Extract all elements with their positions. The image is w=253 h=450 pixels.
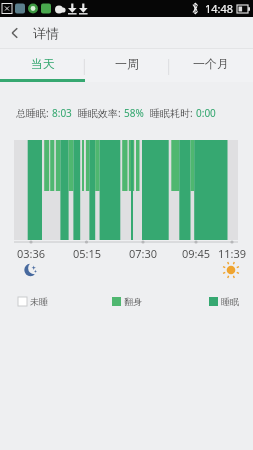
staticText: 一周	[115, 56, 139, 71]
button[interactable]: 一个月	[169, 49, 253, 82]
button[interactable]: 睡眠	[209, 294, 239, 308]
staticText: 睡眠耗时:	[150, 106, 196, 120]
staticText: 03:36	[11, 246, 51, 261]
staticText: 未睡	[30, 296, 48, 307]
staticText: 一个月	[193, 56, 229, 71]
staticText: 11:39	[212, 246, 252, 261]
staticText: 58%	[124, 106, 144, 120]
staticText: 8:03	[52, 106, 72, 120]
button[interactable]: 翻身	[112, 294, 142, 308]
button[interactable]: Back	[0, 17, 30, 49]
staticText: 0:00	[196, 106, 216, 120]
button[interactable]: 未睡	[18, 294, 48, 308]
staticText: 05:15	[67, 246, 107, 261]
staticText: 07:30	[123, 246, 163, 261]
staticText: 总睡眠:	[16, 106, 52, 120]
staticText: 14:48	[205, 1, 234, 16]
staticText: 09:45	[176, 246, 216, 261]
staticText: 详情	[33, 25, 59, 41]
staticText: 睡眠效率:	[78, 106, 124, 120]
button[interactable]: 一周	[85, 49, 169, 82]
staticText: 当天	[31, 56, 55, 71]
button[interactable]: 当天	[0, 49, 85, 82]
staticText: 睡眠	[221, 296, 239, 307]
staticText: 翻身	[124, 296, 142, 307]
